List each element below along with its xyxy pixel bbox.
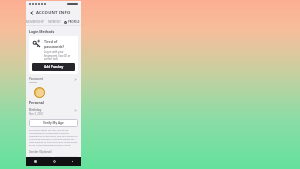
staticText: By clicking Verify My Age, you will be c… bbox=[29, 129, 78, 147]
staticText: PAYMENT bbox=[48, 20, 61, 24]
button[interactable]: Back bbox=[28, 9, 36, 17]
staticText: •••••••• bbox=[29, 81, 37, 85]
staticText: Gender (Optional) bbox=[29, 150, 52, 154]
staticText: Verify My Age bbox=[43, 121, 64, 125]
staticText: Password bbox=[29, 77, 43, 81]
button[interactable]: Back bbox=[63, 157, 81, 166]
staticText: Birthday bbox=[29, 108, 42, 112]
staticText: ACCOUNT INFO bbox=[36, 10, 71, 16]
button[interactable]: PAYMENT bbox=[45, 18, 63, 25]
staticText: PROFILE bbox=[68, 20, 80, 24]
staticText: Nov 3, 2001 bbox=[29, 112, 44, 116]
button[interactable]: Recents bbox=[26, 157, 45, 166]
staticText: Add Passkey bbox=[44, 65, 64, 69]
button[interactable]: Password bbox=[29, 77, 78, 85]
button[interactable]: Home bbox=[45, 157, 63, 166]
staticText: Tired of passwords? bbox=[44, 39, 75, 49]
staticText: Login Methods bbox=[29, 29, 55, 34]
button[interactable]: PROFILE bbox=[63, 18, 81, 25]
button[interactable]: Birthday bbox=[29, 108, 78, 116]
staticText: Personal bbox=[29, 100, 44, 105]
button[interactable]: Verify My Age bbox=[29, 119, 78, 127]
staticText: MEMBERSHIP bbox=[26, 20, 45, 24]
staticText: Log in with your fingerprint, face ID or… bbox=[44, 50, 75, 60]
button[interactable]: Add Passkey bbox=[32, 63, 75, 71]
button[interactable]: MEMBERSHIP bbox=[26, 18, 45, 25]
